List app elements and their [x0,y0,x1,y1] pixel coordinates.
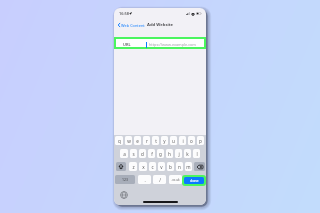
staticText: u [172,138,175,144]
button[interactable]: Emoji keyboard [120,191,128,199]
button[interactable]: z [129,162,137,171]
staticText: z [132,164,135,170]
staticText: v [160,164,163,170]
button[interactable]: u [170,136,177,145]
staticText: f [151,151,153,157]
button[interactable]: t [152,136,159,145]
button[interactable]: Shift [116,162,126,171]
staticText: / [159,177,161,183]
button[interactable]: q [115,136,123,145]
button[interactable]: Backspace [194,162,205,171]
button[interactable]: y [161,136,168,145]
button[interactable]: . [138,175,151,184]
staticText: x [142,164,145,170]
staticText: i [182,138,184,144]
button[interactable]: b [167,162,174,171]
button[interactable]: k [184,149,191,158]
button[interactable]: URL [116,39,204,47]
button[interactable]: r [143,136,150,145]
button[interactable]: m [185,162,192,171]
staticText: d [141,151,144,157]
button[interactable]: e [134,136,141,145]
button[interactable]: f [148,149,155,158]
button[interactable]: i [179,136,186,145]
staticText: p [199,138,202,144]
button[interactable]: x [139,162,147,171]
staticText: Web Content [121,23,145,28]
staticText: r [146,138,148,144]
staticText: t [155,138,157,144]
button[interactable]: j [175,149,182,158]
staticText: o [190,138,193,144]
staticText: c [151,164,154,170]
button[interactable]: d [139,149,146,158]
button[interactable]: g [157,149,164,158]
staticText: l [196,151,198,157]
staticText: w [127,138,131,144]
staticText: g [159,151,162,157]
staticText: . [144,177,146,183]
staticText: n [178,164,181,170]
staticText: q [118,138,121,144]
button[interactable]: Web Content [118,21,145,29]
button[interactable]: v [158,162,165,171]
staticText: h [168,151,171,157]
button[interactable]: done [184,177,204,184]
button[interactable]: n [176,162,183,171]
button[interactable]: a [120,149,128,158]
staticText: .co.uk [171,178,180,182]
staticText: 123 [122,177,129,182]
staticText: m [186,164,191,170]
button[interactable]: w [125,136,132,145]
button[interactable]: h [166,149,173,158]
staticText: e [136,138,139,144]
staticText: 16:58 [119,11,129,16]
staticText: y [163,138,166,144]
button[interactable]: 123 [115,175,135,184]
button[interactable]: p [197,136,204,145]
button[interactable]: c [149,162,156,171]
button[interactable]: s [130,149,137,158]
staticText: done [190,178,199,183]
staticText: b [169,164,172,170]
staticText: k [186,151,189,157]
staticText: a [123,151,126,157]
staticText: j [178,151,180,157]
staticText: https://www.example.com [149,42,196,47]
button[interactable]: l [193,149,200,158]
staticText: URL [123,42,131,47]
button[interactable]: o [188,136,195,145]
staticText: s [132,151,135,157]
button[interactable]: / [153,175,166,184]
button[interactable]: .co.uk [169,175,182,184]
staticText: Add Website [147,22,174,28]
